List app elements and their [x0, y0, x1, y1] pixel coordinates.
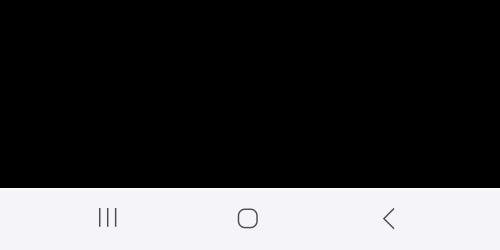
button[interactable]: Home [178, 188, 318, 250]
button[interactable]: Back [318, 188, 458, 250]
button[interactable]: Recent apps [38, 188, 178, 250]
